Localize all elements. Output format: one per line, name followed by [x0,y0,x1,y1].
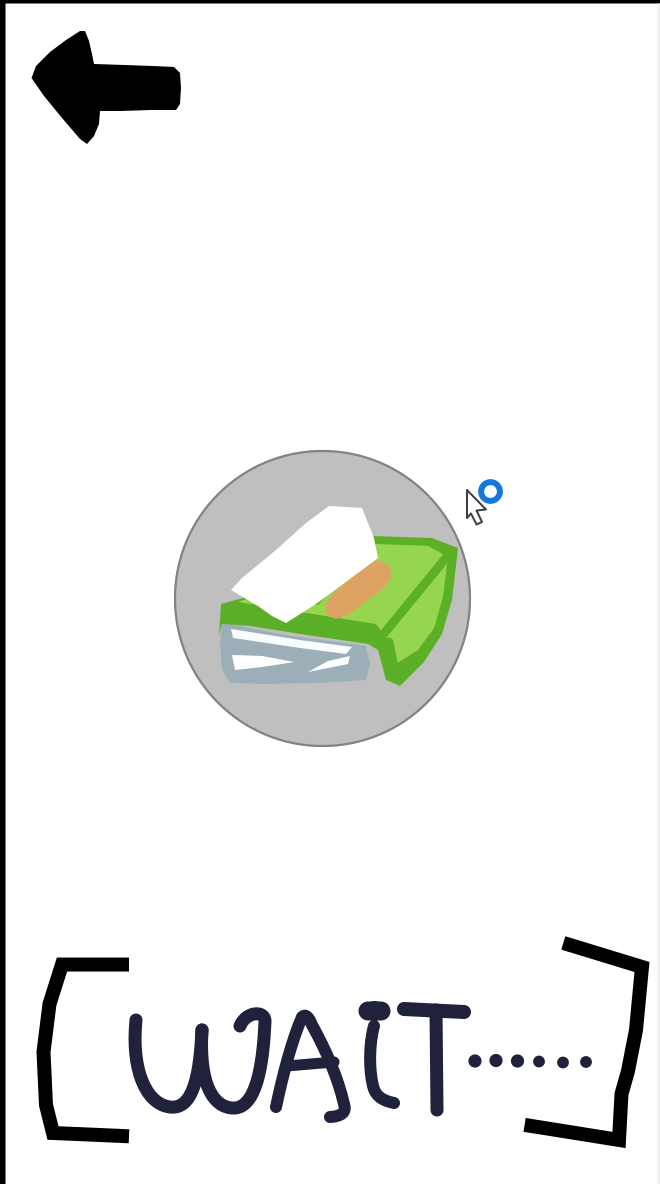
button[interactable]: Back [0,0,200,170]
